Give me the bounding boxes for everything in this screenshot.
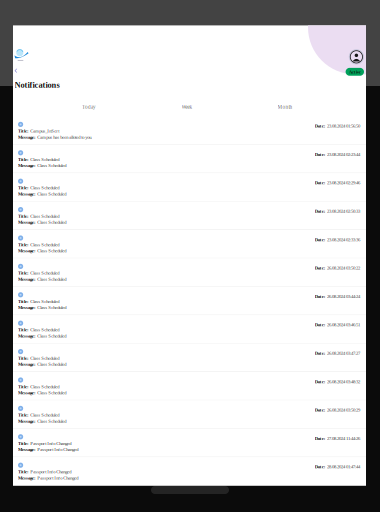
- staticText: 26.08.2024 03:50:29: [327, 407, 360, 413]
- staticText: Class Scheduled: [37, 276, 66, 282]
- staticText: Week: [181, 104, 192, 110]
- staticText: Message:: [18, 418, 36, 424]
- staticText: 23.08.2024 02:23:44: [327, 152, 360, 157]
- staticText: Message:: [18, 390, 36, 395]
- staticText: Date:: [315, 322, 326, 327]
- staticText: 27.08.2024 11:44:26: [327, 436, 360, 441]
- staticText: Message:: [18, 305, 36, 310]
- staticText: Message:: [18, 220, 36, 225]
- staticText: Class Scheduled: [30, 356, 59, 361]
- staticText: Date:: [315, 294, 326, 299]
- staticText: Class Scheduled: [37, 248, 66, 253]
- staticText: Date:: [315, 152, 326, 157]
- staticText: Passport Info Changed: [30, 441, 71, 446]
- staticText: Message:: [18, 248, 36, 253]
- staticText: Campus has been alloted to you.: [37, 134, 92, 140]
- staticText: Message:: [18, 276, 36, 282]
- staticText: Active: [349, 69, 361, 74]
- staticText: Passport Info Changed: [30, 469, 71, 474]
- staticText: Title:: [18, 214, 29, 219]
- button[interactable]: Account: [349, 49, 364, 64]
- staticText: 23.08.2024 02:50:33: [327, 209, 360, 214]
- staticText: Class Scheduled: [30, 299, 59, 304]
- staticText: Today: [82, 104, 96, 110]
- staticText: Message:: [18, 447, 36, 452]
- button[interactable]: Title:: [13, 287, 366, 315]
- staticText: 26.08.2024 03:50:22: [327, 265, 360, 271]
- button[interactable]: Title:: [13, 372, 366, 400]
- button[interactable]: Title:: [13, 429, 366, 457]
- staticText: Date:: [315, 237, 326, 242]
- button[interactable]: Title:: [13, 116, 366, 145]
- staticText: 26.08.2024 03:48:32: [327, 379, 360, 384]
- staticText: Class Scheduled: [37, 220, 66, 225]
- staticText: Date:: [315, 209, 326, 214]
- staticText: Class Scheduled: [37, 305, 66, 310]
- staticText: Title:: [18, 327, 29, 332]
- button[interactable]: Month: [236, 102, 334, 112]
- staticText: Title:: [18, 128, 29, 134]
- staticText: 28.08.2024 01:47:44: [327, 464, 360, 469]
- button[interactable]: Title:: [13, 400, 366, 429]
- staticText: Passport Info Changed: [37, 475, 78, 480]
- staticText: 26.08.2024 03:44:24: [327, 294, 360, 299]
- button[interactable]: Title:: [13, 202, 366, 230]
- staticText: Title:: [18, 412, 29, 418]
- button[interactable]: Title:: [13, 344, 366, 372]
- staticText: Date:: [315, 436, 326, 441]
- staticText: Message:: [18, 163, 36, 168]
- staticText: Class Scheduled: [37, 163, 66, 168]
- staticText: 26.08.2024 03:47:27: [327, 351, 360, 356]
- staticText: Date:: [315, 180, 326, 185]
- staticText: Class Scheduled: [37, 418, 66, 424]
- staticText: Class Scheduled: [37, 333, 66, 338]
- staticText: Title:: [18, 242, 29, 247]
- button[interactable]: Back: [14, 68, 22, 74]
- staticText: Date:: [315, 351, 326, 356]
- staticText: Class Scheduled: [30, 157, 59, 162]
- staticText: Message:: [18, 333, 36, 338]
- button[interactable]: Active: [346, 68, 364, 76]
- staticText: 23.08.2024 02:33:36: [327, 237, 360, 242]
- staticText: Title:: [18, 157, 29, 162]
- staticText: Title:: [18, 299, 29, 304]
- staticText: Date:: [315, 464, 326, 469]
- staticText: Date:: [315, 123, 326, 129]
- staticText: 26.08.2024 03:46:51: [327, 322, 360, 327]
- staticText: Title:: [18, 469, 29, 474]
- staticText: Date:: [315, 265, 326, 271]
- staticText: Title:: [18, 185, 29, 190]
- staticText: Date:: [315, 407, 326, 413]
- staticText: Class Scheduled: [30, 327, 59, 332]
- staticText: Message:: [18, 191, 36, 196]
- staticText: Class Scheduled: [30, 242, 59, 247]
- staticText: Class Scheduled: [37, 191, 66, 196]
- staticText: Class Scheduled: [30, 270, 59, 276]
- staticText: 23.08.2024 02:29:46: [327, 180, 360, 185]
- button[interactable]: Title:: [13, 457, 366, 486]
- button[interactable]: Title:: [13, 173, 366, 202]
- staticText: Passport Info Changed: [37, 447, 78, 452]
- staticText: Title:: [18, 441, 29, 446]
- staticText: Message:: [18, 362, 36, 367]
- staticText: Class Scheduled: [30, 214, 59, 219]
- button[interactable]: Week: [138, 102, 236, 112]
- button[interactable]: Title:: [13, 258, 366, 287]
- staticText: Class Scheduled: [30, 384, 59, 389]
- staticText: Message:: [18, 134, 36, 140]
- staticText: Message:: [18, 475, 36, 480]
- staticText: Title:: [18, 384, 29, 389]
- button[interactable]: Title:: [13, 315, 366, 344]
- staticText: Class Scheduled: [37, 362, 66, 367]
- button[interactable]: Title:: [13, 145, 366, 173]
- staticText: Date:: [315, 379, 326, 384]
- staticText: Notifications: [14, 80, 59, 89]
- button[interactable]: Today: [40, 102, 138, 112]
- staticText: Campus_InSert: [30, 128, 59, 134]
- staticText: Class Scheduled: [37, 390, 66, 395]
- staticText: 23.08.2024 01:56:50: [327, 123, 360, 129]
- button[interactable]: Title:: [13, 230, 366, 258]
- staticText: Month: [277, 104, 292, 110]
- staticText: Title:: [18, 356, 29, 361]
- staticText: Title:: [18, 270, 29, 276]
